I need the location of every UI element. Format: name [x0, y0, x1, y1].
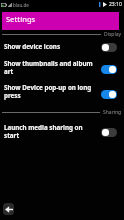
button[interactable]: Back	[3, 203, 14, 215]
button[interactable]	[0, 82, 124, 106]
staticText: Show thumbnails and album art	[4, 59, 96, 75]
button[interactable]	[0, 38, 124, 57]
staticText: Launch media sharing on start	[4, 123, 96, 139]
staticText: blau.de	[13, 2, 29, 8]
button[interactable]	[0, 57, 124, 82]
button[interactable]: Settings	[2, 12, 119, 30]
staticText: Sharing	[103, 109, 122, 116]
staticText: Display	[104, 31, 122, 38]
staticText: Show device icons	[4, 42, 96, 51]
button[interactable]	[0, 120, 124, 145]
staticText: 23:10	[109, 1, 122, 8]
staticText: Show Device pop-up on long press	[4, 83, 96, 99]
staticText: Settings	[6, 14, 36, 24]
